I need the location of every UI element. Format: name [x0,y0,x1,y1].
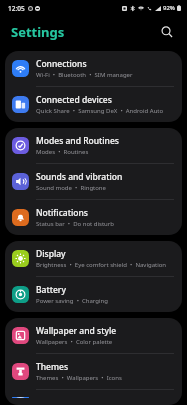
staticText: Sound mode • Ringtone [36,184,106,192]
button[interactable]: Home screen [5,390,182,405]
staticText: Settings [11,23,65,41]
staticText: Sounds and vibration [36,171,123,183]
button[interactable]: Notifications [5,200,182,235]
staticText: Brightness • Eye comfort shield • Naviga… [36,261,174,269]
button[interactable]: Battery [5,277,182,312]
staticText: Themes [36,361,69,373]
staticText: Modes • Routines [36,148,89,156]
button[interactable]: Sounds and vibration [5,164,182,199]
staticText: Wallpaper and style [36,325,117,337]
staticText: 92% [163,4,175,12]
button[interactable]: Search settings [156,21,178,43]
staticText: 12:05 [8,4,25,13]
button[interactable]: Connections [5,51,182,86]
staticText: Status bar • Do not disturb [36,220,114,228]
button[interactable]: Connected devices [5,87,182,122]
button[interactable]: Wallpaper and style [5,318,182,353]
button[interactable]: Themes [5,354,182,389]
staticText: Wallpapers • Color palette [36,338,113,346]
staticText: Display [36,248,66,260]
staticText: Connections [36,58,87,70]
staticText: Power saving • Charging [36,297,108,305]
staticText: Connected devices [36,94,112,106]
button[interactable]: Display [5,241,182,276]
staticText: Notifications [36,207,88,219]
staticText: Themes • Wallpapers • Icons [36,374,122,382]
staticText: Battery [36,284,66,296]
staticText: Wi-Fi • Bluetooth • SIM manager [36,71,133,79]
staticText: Modes and Routines [36,135,119,147]
button[interactable]: Modes and Routines [5,128,182,163]
staticText: Quick Share • Samsung DeX • Android Auto [36,107,164,115]
